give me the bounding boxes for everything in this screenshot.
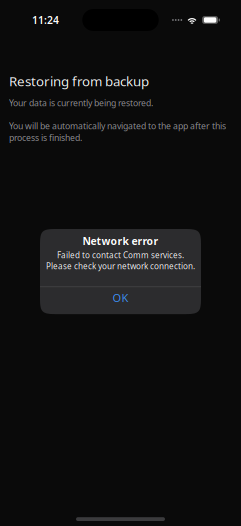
staticText: Your data is currently being restored. — [9, 97, 153, 109]
staticText: You will be automatically navigated to t… — [9, 120, 226, 144]
staticText: Restoring from backup — [9, 72, 149, 90]
staticText: OK — [112, 290, 128, 305]
staticText: Please check your network connection. — [46, 260, 195, 272]
button[interactable]: OK — [40, 287, 201, 314]
staticText: Failed to contact Comm services. — [57, 249, 184, 261]
staticText: 11:24 — [32, 13, 59, 27]
staticText: Network error — [82, 234, 158, 248]
